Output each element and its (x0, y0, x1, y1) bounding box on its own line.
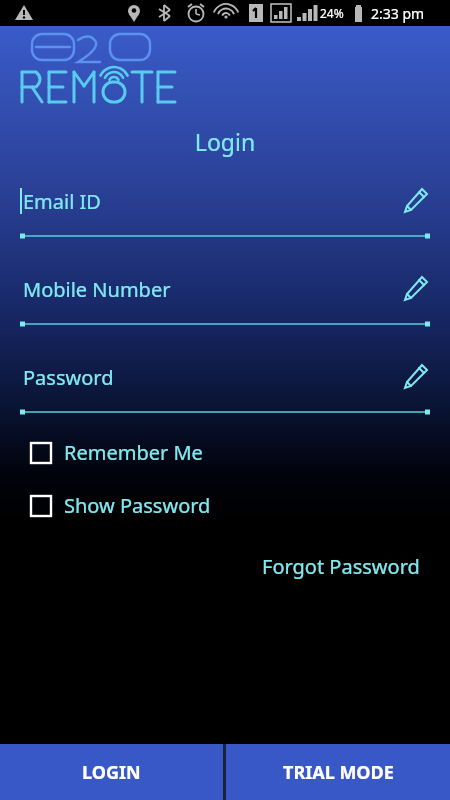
button[interactable]: Mobile Number (20, 269, 430, 327)
staticText: Show Password (64, 492, 211, 519)
staticText: Login (0, 126, 450, 157)
staticText: Email ID (23, 188, 101, 215)
button[interactable]: Email ID (20, 181, 430, 239)
button[interactable]: Show Password (30, 492, 450, 519)
staticText: Forgot Password (262, 553, 420, 580)
other: Edit Password (400, 362, 430, 392)
button[interactable]: TRIAL MODE (226, 744, 450, 800)
staticText: 2:33 pm (371, 4, 425, 23)
button[interactable]: Password (20, 357, 430, 415)
other: Edit Email ID (400, 186, 430, 216)
staticText: Password (23, 364, 114, 391)
staticText: LOGIN (82, 760, 141, 785)
other: Edit Mobile Number (400, 274, 430, 304)
staticText: Remember Me (64, 439, 203, 466)
button[interactable]: Forgot Password (258, 549, 424, 584)
staticText: 24% (320, 5, 344, 21)
staticText: Mobile Number (23, 276, 171, 303)
button[interactable]: Remember Me (30, 439, 450, 466)
staticText: TRIAL MODE (283, 760, 394, 785)
button[interactable]: LOGIN (0, 744, 223, 800)
